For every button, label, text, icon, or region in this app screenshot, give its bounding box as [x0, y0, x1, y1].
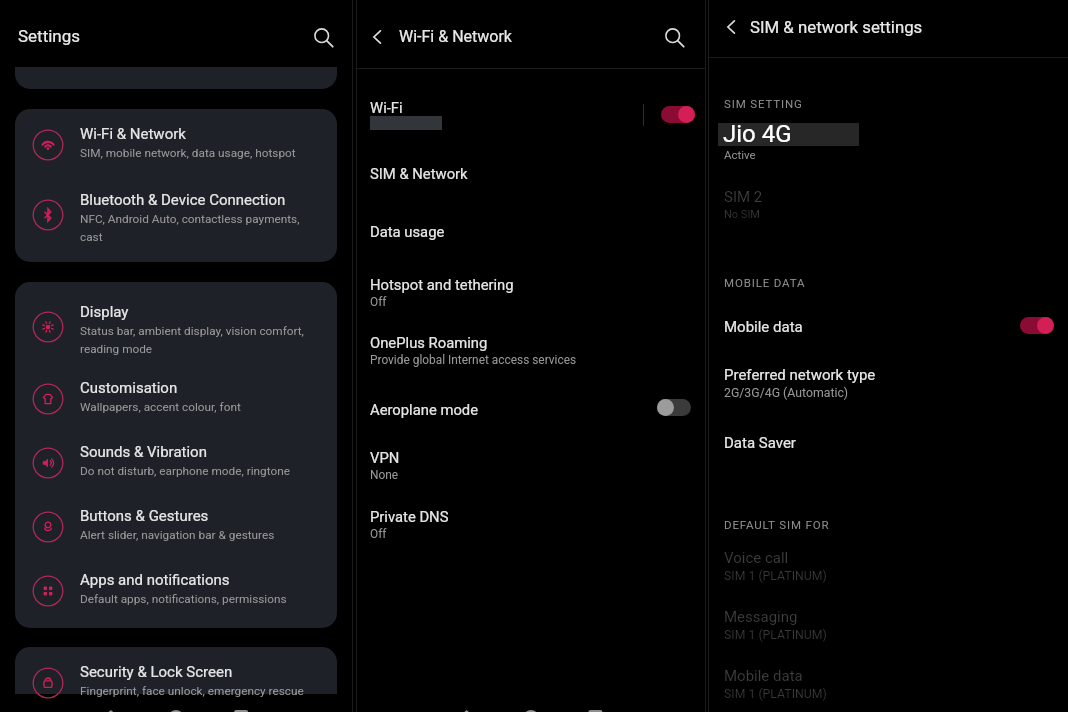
button[interactable]: [357, 439, 705, 491]
staticText: SIM 1 (PLATINUM): [724, 569, 827, 583]
button[interactable]: [709, 186, 1068, 228]
staticText: Sounds & Vibration: [80, 443, 207, 461]
staticText: Status bar, ambient display, vision comf…: [80, 324, 307, 356]
staticText: SIM 1 (PLATINUM): [724, 628, 827, 642]
staticText: Do not disturb, earphone mode, ringtone: [80, 464, 307, 478]
button[interactable]: Back: [715, 11, 747, 43]
button[interactable]: [15, 497, 337, 557]
staticText: Data Saver: [724, 434, 796, 452]
staticText: 2G/3G/4G (Automatic): [724, 386, 849, 400]
button[interactable]: Back: [361, 21, 393, 53]
staticText: SIM & Network: [370, 165, 468, 182]
staticText: None: [370, 468, 399, 482]
staticText: Messaging: [724, 608, 798, 626]
button[interactable]: [15, 67, 337, 89]
staticText: SIM & network settings: [750, 17, 923, 37]
staticText: Aeroplane mode: [370, 401, 479, 418]
staticText: Customisation: [80, 379, 178, 397]
staticText: SIM 1 (PLATINUM): [724, 687, 827, 701]
staticText: Hotspot and tethering: [370, 276, 514, 293]
button[interactable]: [357, 213, 705, 249]
staticText: Wallpapers, accent colour, font: [80, 400, 307, 414]
button[interactable]: [15, 297, 337, 357]
staticText: Data usage: [370, 223, 445, 240]
staticText: SIM 2: [724, 188, 763, 206]
staticText: Buttons & Gestures: [80, 507, 209, 525]
staticText: Jio 4G: [723, 120, 792, 148]
button[interactable]: [709, 424, 1068, 460]
button[interactable]: [15, 115, 337, 175]
button[interactable]: Switch off: [657, 399, 691, 416]
button[interactable]: [15, 561, 337, 621]
staticText: Wi-Fi & Network: [399, 27, 512, 46]
button[interactable]: Switch on: [661, 106, 695, 123]
button[interactable]: Search: [308, 22, 338, 52]
staticText: Settings: [18, 26, 81, 46]
staticText: No SIM: [724, 208, 760, 221]
button[interactable]: [709, 598, 1068, 650]
staticText: Wi-Fi: [370, 99, 403, 116]
button[interactable]: [709, 657, 1068, 709]
button[interactable]: [709, 539, 1068, 591]
button[interactable]: [357, 88, 705, 140]
button[interactable]: [357, 498, 705, 550]
staticText: Off: [370, 527, 387, 541]
staticText: Bluetooth & Device Connection: [80, 191, 286, 209]
button[interactable]: [357, 155, 705, 191]
staticText: Wi-Fi & Network: [80, 125, 186, 143]
staticText: Preferred network type: [724, 366, 876, 384]
staticText: Provide global Internet access services: [370, 353, 577, 367]
staticText: Display: [80, 303, 129, 321]
staticText: Voice call: [724, 549, 789, 567]
button[interactable]: [357, 266, 705, 318]
staticText: DEFAULT SIM FOR: [724, 518, 830, 531]
staticText: Apps and notifications: [80, 571, 230, 589]
button[interactable]: [709, 306, 1068, 344]
button[interactable]: Search: [659, 22, 689, 52]
button[interactable]: [15, 653, 337, 712]
button[interactable]: [15, 433, 337, 493]
staticText: MOBILE DATA: [724, 276, 806, 289]
staticText: Default apps, notifications, permissions: [80, 592, 307, 606]
staticText: VPN: [370, 449, 400, 466]
staticText: Active: [724, 148, 756, 161]
staticText: Security & Lock Screen: [80, 663, 233, 681]
staticText: NFC, Android Auto, contactless payments,…: [80, 212, 307, 244]
button[interactable]: [709, 118, 1068, 166]
staticText: Fingerprint, face unlock, emergency resc…: [80, 684, 307, 698]
staticText: SIM, mobile network, data usage, hotspot: [80, 146, 307, 160]
staticText: Mobile data: [724, 667, 803, 685]
button[interactable]: Switch on: [1020, 317, 1054, 334]
staticText: OnePlus Roaming: [370, 334, 488, 351]
button[interactable]: [357, 390, 705, 428]
staticText: SIM SETTING: [724, 97, 803, 110]
button[interactable]: [357, 324, 705, 376]
staticText: Alert slider, navigation bar & gestures: [80, 528, 307, 542]
staticText: Private DNS: [370, 508, 449, 525]
button[interactable]: [15, 185, 337, 245]
staticText: Off: [370, 295, 387, 309]
button[interactable]: [15, 369, 337, 429]
staticText: Mobile data: [724, 318, 803, 336]
button[interactable]: [709, 356, 1068, 408]
